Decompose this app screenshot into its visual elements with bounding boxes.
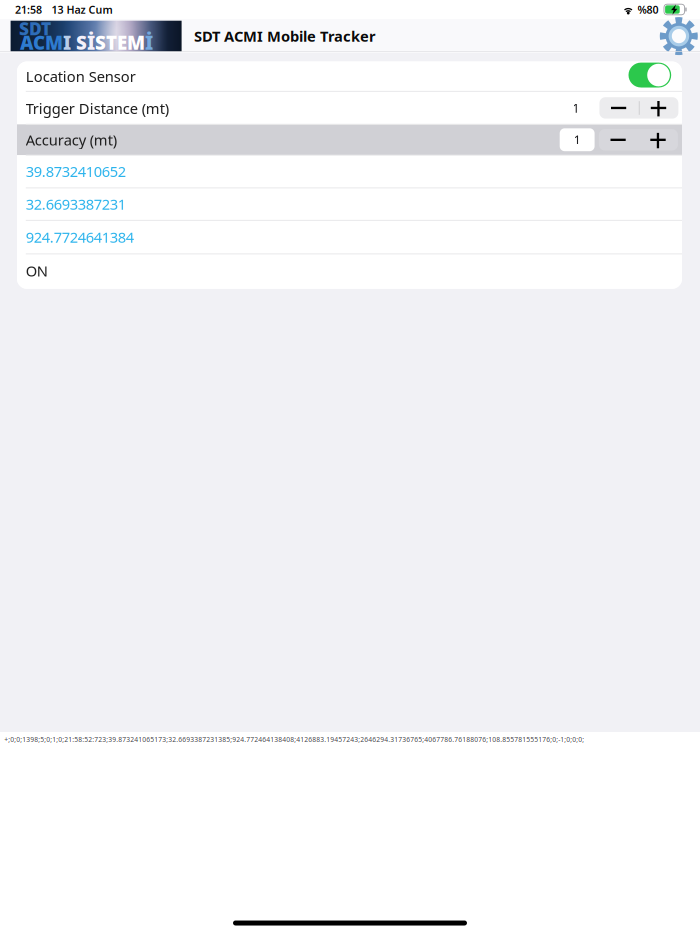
staticText: I <box>63 30 76 55</box>
staticText: 1 <box>572 100 579 116</box>
staticText: Location Sensor <box>26 67 136 86</box>
button[interactable]: Location Sensor <box>17 61 682 91</box>
staticText: ACM <box>20 30 63 55</box>
staticText: Sİ <box>76 30 95 55</box>
staticText: SDT ACMI Mobile Tracker <box>194 26 376 46</box>
button[interactable]: Stepper <box>599 129 678 150</box>
button[interactable]: Stepper <box>599 97 678 119</box>
button[interactable]: 924.7724641384 <box>17 220 682 254</box>
button[interactable]: Accuracy (mt) <box>17 124 682 155</box>
button[interactable]: Settings <box>660 18 698 53</box>
button[interactable]: 39.8732410652 <box>17 155 682 188</box>
staticText: STEM <box>95 30 145 55</box>
staticText: 39.8732410652 <box>26 162 126 181</box>
staticText: ON <box>26 261 48 281</box>
button[interactable]: Trigger Distance (mt) <box>17 91 682 124</box>
staticText: %80 <box>638 3 659 17</box>
staticText: 21:58 <box>15 3 42 17</box>
staticText: +;0;0;1398;5;0;1;0;21:58:52:723;39.87324… <box>4 735 584 744</box>
staticText: SDT <box>19 17 51 40</box>
staticText: İ <box>145 30 153 55</box>
button[interactable]: Location Sensor <box>628 63 671 87</box>
staticText: Accuracy (mt) <box>26 130 117 150</box>
button[interactable]: 32.6693387231 <box>17 188 682 220</box>
staticText: 13 Haz Cum <box>51 3 112 17</box>
staticText: 32.6693387231 <box>26 194 126 214</box>
staticText: Trigger Distance (mt) <box>26 98 169 118</box>
staticText: 1 <box>574 132 581 148</box>
staticText: 924.7724641384 <box>26 227 134 247</box>
button[interactable]: ON <box>17 254 682 289</box>
